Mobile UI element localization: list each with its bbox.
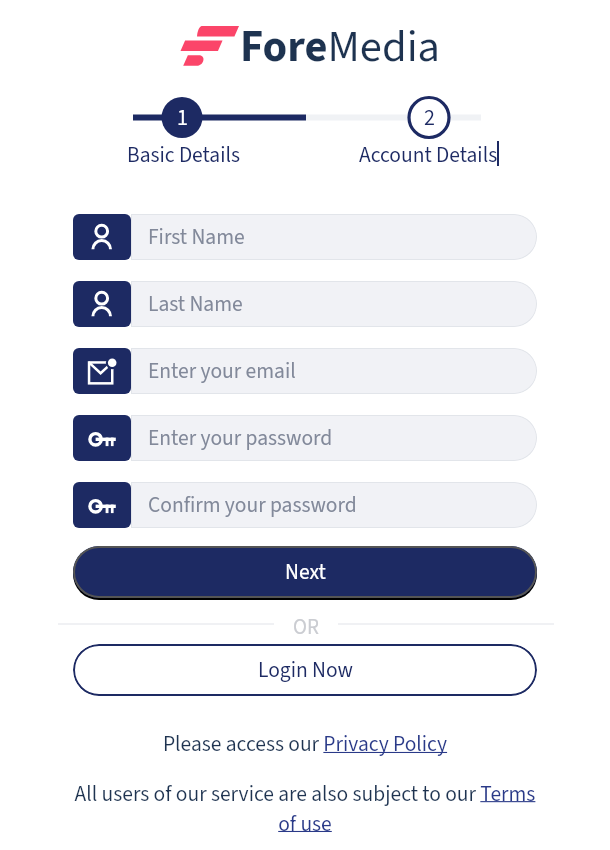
button[interactable]: Next <box>73 546 537 598</box>
staticText: First Name <box>148 222 245 253</box>
other: Person <box>73 214 131 260</box>
staticText: Next <box>285 557 326 588</box>
button[interactable]: Person <box>73 281 537 327</box>
staticText: OR <box>293 612 319 635</box>
other: Email <box>73 348 131 394</box>
staticText: Enter your email <box>148 356 296 387</box>
other: Password <box>73 415 131 461</box>
button[interactable]: Please access our Privacy Policy <box>40 729 570 760</box>
other: Person <box>73 281 131 327</box>
staticText: Login Now <box>258 655 353 686</box>
button[interactable]: All users of our service are also subjec… <box>73 779 537 839</box>
staticText: Enter your password <box>148 423 333 454</box>
staticText: Account Details <box>359 140 498 171</box>
button[interactable]: Password <box>73 415 537 461</box>
other: Password <box>73 482 131 528</box>
button[interactable]: Person <box>73 214 537 260</box>
staticText: Last Name <box>148 289 243 320</box>
button[interactable]: Login Now <box>73 644 537 696</box>
button[interactable]: Email <box>73 348 537 394</box>
staticText: ForeMedia <box>240 15 441 78</box>
staticText: 2 <box>424 102 435 133</box>
staticText: Basic Details <box>127 140 240 171</box>
button[interactable]: Password <box>73 482 537 528</box>
staticText: 1 <box>177 102 188 133</box>
button[interactable]: 2 <box>409 97 450 138</box>
staticText: Confirm your password <box>148 490 357 521</box>
button[interactable]: 1 <box>162 97 203 138</box>
